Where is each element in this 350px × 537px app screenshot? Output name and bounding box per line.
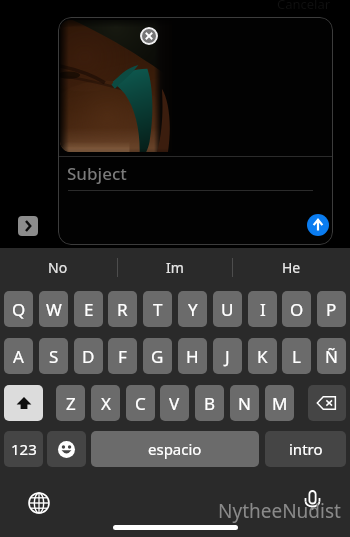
- staticText: No: [48, 258, 68, 277]
- staticText: Z: [66, 392, 76, 415]
- staticText: NytheeNudist: [218, 498, 341, 524]
- staticText: intro: [289, 439, 323, 459]
- staticText: B: [204, 392, 216, 415]
- staticText: J: [225, 345, 230, 368]
- button[interactable]: S: [39, 338, 68, 374]
- button[interactable]: J: [213, 338, 242, 374]
- staticText: E: [84, 298, 94, 321]
- staticText: Im: [166, 258, 184, 277]
- button[interactable]: Voice input: [300, 488, 325, 513]
- staticText: K: [257, 345, 268, 368]
- button[interactable]: G: [143, 338, 172, 374]
- button[interactable]: 123: [4, 431, 43, 467]
- staticText: H: [186, 345, 199, 368]
- button[interactable]: N: [230, 385, 259, 421]
- button[interactable]: Backspace: [308, 385, 346, 421]
- staticText: U: [221, 298, 234, 321]
- button[interactable]: Shift: [4, 385, 43, 421]
- button[interactable]: K: [248, 338, 277, 374]
- staticText: G: [151, 345, 164, 368]
- staticText: 123: [11, 439, 37, 459]
- staticText: Cancelar: [277, 0, 331, 13]
- button[interactable]: O: [282, 291, 311, 327]
- staticText: L: [292, 345, 301, 368]
- button[interactable]: W: [39, 291, 68, 327]
- staticText: espacio: [148, 439, 202, 459]
- staticText: M: [272, 392, 288, 415]
- button[interactable]: Emoji: [47, 431, 86, 467]
- staticText: T: [153, 298, 163, 321]
- staticText: Ñ: [325, 345, 338, 368]
- button[interactable]: Remove attachment: [140, 27, 158, 45]
- button[interactable]: intro: [265, 431, 346, 467]
- button[interactable]: L: [282, 338, 311, 374]
- staticText: N: [238, 392, 251, 415]
- staticText: I: [260, 298, 266, 321]
- staticText: Y: [188, 298, 198, 321]
- button[interactable]: I: [248, 291, 277, 327]
- button[interactable]: F: [108, 338, 137, 374]
- button[interactable]: D: [74, 338, 103, 374]
- button[interactable]: T: [143, 291, 172, 327]
- button[interactable]: X: [91, 385, 120, 421]
- button[interactable]: He: [233, 248, 350, 286]
- button[interactable]: C: [126, 385, 155, 421]
- staticText: Q: [12, 298, 26, 321]
- staticText: Subject: [67, 162, 127, 185]
- staticText: A: [13, 345, 24, 368]
- button[interactable]: Change keyboard language: [28, 492, 50, 514]
- staticText: X: [101, 392, 111, 415]
- button[interactable]: Y: [178, 291, 207, 327]
- button[interactable]: espacio: [91, 431, 259, 467]
- button[interactable]: No: [0, 248, 116, 286]
- staticText: R: [117, 298, 128, 321]
- button[interactable]: Ñ: [317, 338, 346, 374]
- button[interactable]: U: [213, 291, 242, 327]
- button[interactable]: Z: [56, 385, 85, 421]
- staticText: S: [49, 345, 59, 368]
- button[interactable]: B: [195, 385, 224, 421]
- staticText: P: [326, 298, 337, 321]
- staticText: He: [282, 258, 301, 277]
- staticText: W: [46, 298, 62, 321]
- button[interactable]: Q: [4, 291, 33, 327]
- button[interactable]: H: [178, 338, 207, 374]
- staticText: O: [290, 298, 304, 321]
- staticText: D: [82, 345, 95, 368]
- staticText: V: [169, 392, 180, 415]
- button[interactable]: V: [160, 385, 189, 421]
- button[interactable]: R: [108, 291, 137, 327]
- button[interactable]: Im: [116, 248, 233, 286]
- staticText: F: [118, 345, 127, 368]
- button[interactable]: Send: [307, 214, 329, 236]
- button[interactable]: Expand attachment options: [18, 216, 38, 236]
- button[interactable]: A: [4, 338, 33, 374]
- staticText: C: [135, 392, 146, 415]
- button[interactable]: M: [265, 385, 294, 421]
- button[interactable]: P: [317, 291, 346, 327]
- button[interactable]: E: [74, 291, 103, 327]
